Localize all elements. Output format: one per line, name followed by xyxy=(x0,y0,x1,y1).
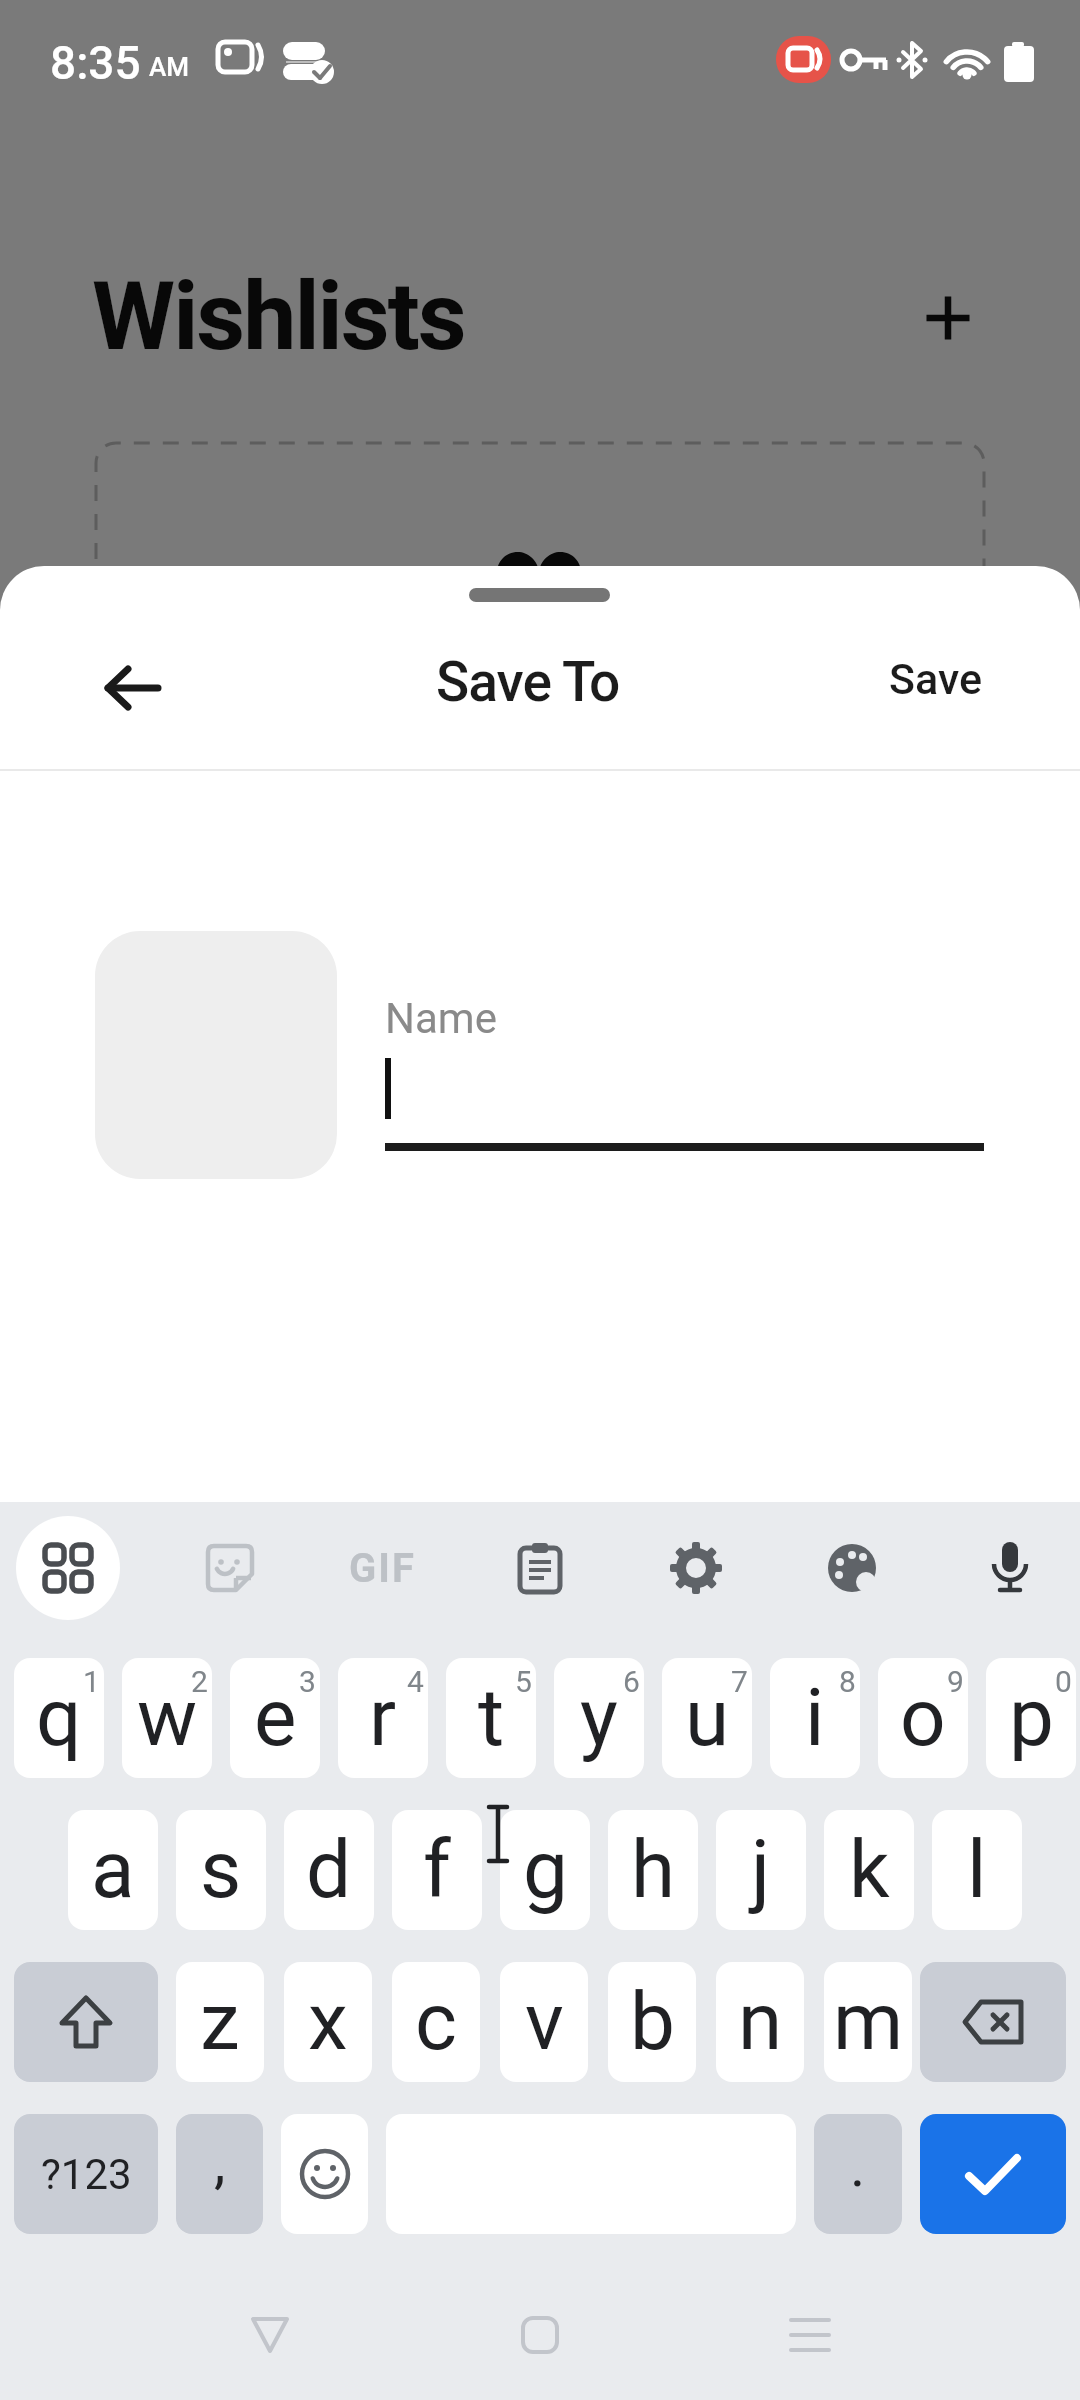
staticText: n xyxy=(738,1975,783,2069)
staticText: d xyxy=(306,1823,352,1917)
staticText: a xyxy=(91,1823,135,1917)
button[interactable] xyxy=(920,2114,1066,2234)
staticText: s xyxy=(200,1823,242,1917)
button[interactable] xyxy=(800,1516,904,1620)
button[interactable] xyxy=(908,278,988,358)
staticText: c xyxy=(415,1975,457,2069)
staticText: AM xyxy=(149,52,190,82)
staticText: w xyxy=(137,1671,198,1765)
button[interactable]: , xyxy=(176,2114,263,2234)
button[interactable]: g xyxy=(500,1810,590,1930)
button[interactable]: ?123 xyxy=(14,2114,158,2234)
staticText: p xyxy=(1009,1671,1054,1765)
staticText: 9 xyxy=(947,1664,964,1699)
staticText: Wishlists xyxy=(92,261,465,361)
staticText: Save xyxy=(889,654,983,704)
button[interactable]: j xyxy=(716,1810,806,1930)
button[interactable]: l xyxy=(932,1810,1022,1930)
staticText: Name xyxy=(385,994,497,1038)
button[interactable] xyxy=(920,1962,1066,2082)
staticText: z xyxy=(200,1975,240,2069)
staticText: o xyxy=(900,1671,946,1765)
staticText: h xyxy=(631,1823,676,1917)
button[interactable]: . xyxy=(814,2114,902,2234)
staticText: v xyxy=(525,1975,564,2069)
button[interactable] xyxy=(958,1516,1062,1620)
staticText: e xyxy=(254,1671,297,1765)
staticText: 4 xyxy=(407,1664,424,1699)
staticText: m xyxy=(833,1975,904,2069)
button[interactable] xyxy=(234,2299,306,2371)
button[interactable]: q xyxy=(14,1658,104,1778)
button[interactable]: b xyxy=(608,1962,696,2082)
button[interactable]: p xyxy=(986,1658,1076,1778)
staticText: ?123 xyxy=(41,2150,132,2199)
button[interactable]: o xyxy=(878,1658,968,1778)
button[interactable]: y xyxy=(554,1658,644,1778)
button[interactable] xyxy=(14,1962,158,2082)
staticText: g xyxy=(523,1823,568,1917)
button[interactable] xyxy=(88,643,178,733)
button[interactable]: v xyxy=(500,1962,588,2082)
button[interactable] xyxy=(16,1516,120,1620)
staticText: i xyxy=(805,1671,825,1765)
button[interactable]: z xyxy=(176,1962,264,2082)
button[interactable] xyxy=(504,2299,576,2371)
staticText: b xyxy=(630,1975,675,2069)
button[interactable] xyxy=(488,1516,592,1620)
staticText: . xyxy=(850,2132,866,2200)
staticText: 3 xyxy=(299,1664,316,1699)
staticText: 1 xyxy=(83,1664,100,1699)
staticText: t xyxy=(478,1671,505,1765)
staticText: , xyxy=(214,2128,226,2196)
button[interactable]: u xyxy=(662,1658,752,1778)
staticText: k xyxy=(849,1823,890,1917)
button[interactable]: h xyxy=(608,1810,698,1930)
button[interactable]: e xyxy=(230,1658,320,1778)
button[interactable]: a xyxy=(68,1810,158,1930)
staticText: 5 xyxy=(515,1664,532,1699)
staticText: j xyxy=(751,1823,771,1917)
button[interactable] xyxy=(281,2114,368,2234)
button[interactable] xyxy=(774,2299,846,2371)
button[interactable]: x xyxy=(284,1962,372,2082)
staticText: GIF xyxy=(349,1545,416,1592)
button[interactable] xyxy=(644,1516,748,1620)
button[interactable]: c xyxy=(392,1962,480,2082)
staticText: l xyxy=(967,1823,987,1917)
button[interactable]: s xyxy=(176,1810,266,1930)
staticText: 2 xyxy=(191,1664,208,1699)
staticText: f xyxy=(423,1823,451,1917)
button[interactable]: r xyxy=(338,1658,428,1778)
staticText: 6 xyxy=(623,1664,640,1699)
staticText: 7 xyxy=(731,1664,748,1699)
staticText: u xyxy=(685,1671,730,1765)
button[interactable]: d xyxy=(284,1810,374,1930)
button[interactable]: m xyxy=(824,1962,912,2082)
button[interactable]: n xyxy=(716,1962,804,2082)
button[interactable]: i xyxy=(770,1658,860,1778)
staticText: 8:35 xyxy=(50,36,141,90)
button[interactable]: Save xyxy=(856,634,1016,724)
button[interactable]: w xyxy=(122,1658,212,1778)
staticText: y xyxy=(580,1671,618,1765)
button[interactable]: f xyxy=(392,1810,482,1930)
staticText: 0 xyxy=(1055,1664,1072,1699)
button[interactable] xyxy=(178,1516,282,1620)
staticText: r xyxy=(369,1671,397,1765)
staticText: q xyxy=(36,1671,82,1765)
staticText: 8 xyxy=(839,1664,856,1699)
staticText: x xyxy=(308,1975,348,2069)
button[interactable]: t xyxy=(446,1658,536,1778)
button[interactable]: k xyxy=(824,1810,914,1930)
staticText: Save To xyxy=(436,650,620,714)
button[interactable]: GIF xyxy=(330,1516,434,1620)
